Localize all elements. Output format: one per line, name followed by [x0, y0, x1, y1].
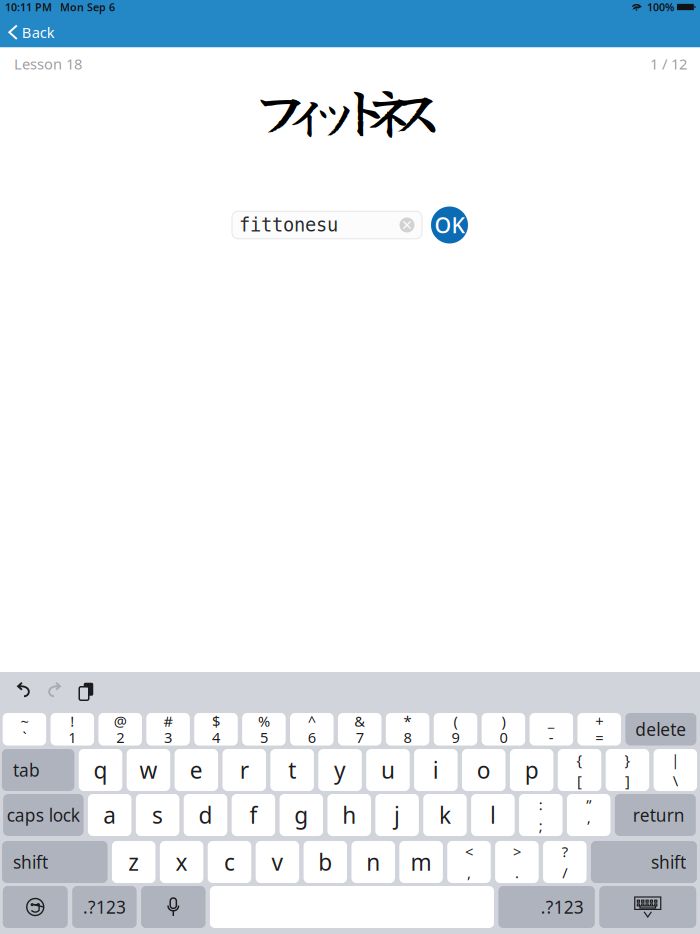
- staticText: j: [394, 800, 400, 830]
- staticText: k: [439, 800, 451, 830]
- staticText: ,: [467, 863, 471, 882]
- button[interactable]: caps lock: [3, 794, 84, 836]
- button[interactable]: }: [606, 749, 649, 791]
- button[interactable]: a: [88, 794, 131, 836]
- staticText: Mon Sep 6: [60, 0, 115, 14]
- button[interactable]: d: [184, 794, 227, 836]
- button[interactable]: .?123: [72, 886, 137, 928]
- staticText: =: [595, 728, 603, 747]
- staticText: 6: [308, 728, 316, 747]
- button[interactable]: y: [318, 749, 362, 791]
- button[interactable]: f: [232, 794, 275, 836]
- button[interactable]: k: [423, 794, 467, 836]
- button[interactable]: .?123: [498, 886, 595, 928]
- staticText: `: [22, 728, 26, 747]
- button[interactable]: m: [399, 841, 443, 883]
- staticText: tab: [13, 758, 40, 781]
- button[interactable]: ^: [290, 713, 333, 745]
- button[interactable]: Dictation: [141, 886, 206, 928]
- button[interactable]: Paste: [69, 669, 99, 710]
- button[interactable]: tab: [2, 749, 74, 791]
- staticText: &: [354, 711, 365, 731]
- staticText: -: [549, 728, 554, 747]
- button[interactable]: q: [79, 749, 122, 791]
- button[interactable]: <: [447, 841, 491, 883]
- staticText: \: [673, 771, 678, 790]
- button[interactable]: Back: [0, 21, 67, 47]
- button[interactable]: (: [434, 713, 477, 745]
- button[interactable]: Redo: [39, 669, 69, 710]
- button[interactable]: delete: [625, 713, 696, 745]
- button[interactable]: Hide keyboard: [599, 886, 696, 928]
- staticText: 9: [451, 728, 459, 747]
- button[interactable]: +: [577, 713, 621, 745]
- button[interactable]: l: [471, 794, 515, 836]
- button[interactable]: e: [175, 749, 218, 791]
- button[interactable]: return: [615, 794, 696, 836]
- staticText: 0: [499, 728, 507, 747]
- button[interactable]: c: [208, 841, 251, 883]
- button[interactable]: _: [529, 713, 573, 745]
- button[interactable]: $: [194, 713, 238, 745]
- staticText: ”: [586, 795, 591, 814]
- staticText: ス: [388, 67, 445, 150]
- staticText: ): [501, 711, 505, 731]
- button[interactable]: s: [136, 794, 179, 836]
- button[interactable]: shift: [2, 841, 108, 883]
- button[interactable]: t: [270, 749, 314, 791]
- staticText: v: [271, 847, 283, 877]
- staticText: c: [224, 847, 235, 877]
- staticText: s: [152, 800, 163, 830]
- staticText: _: [548, 711, 555, 731]
- button[interactable]: {: [558, 749, 601, 791]
- staticText: +: [595, 711, 603, 731]
- button[interactable]: b: [304, 841, 347, 883]
- button[interactable]: n: [351, 841, 395, 883]
- button[interactable]: Undo: [9, 669, 39, 710]
- button[interactable]: w: [127, 749, 170, 791]
- staticText: z: [128, 847, 139, 877]
- button[interactable]: *: [386, 713, 429, 745]
- button[interactable]: p: [510, 749, 553, 791]
- button[interactable]: :: [519, 794, 562, 836]
- button[interactable]: !: [50, 713, 94, 745]
- button[interactable]: OK: [431, 206, 468, 243]
- button[interactable]: ~: [3, 713, 46, 745]
- staticText: ’: [587, 816, 590, 835]
- button[interactable]: i: [414, 749, 458, 791]
- button[interactable]: %: [242, 713, 286, 745]
- button[interactable]: ): [482, 713, 525, 745]
- staticText: $: [212, 711, 220, 731]
- button[interactable]: >: [495, 841, 539, 883]
- button[interactable]: |: [654, 749, 697, 791]
- staticText: #: [164, 711, 173, 731]
- button[interactable]: ”: [567, 794, 610, 836]
- button[interactable]: @: [98, 713, 142, 745]
- button[interactable]: Clear text: [396, 214, 418, 236]
- staticText: h: [342, 800, 356, 830]
- button[interactable]: x: [160, 841, 203, 883]
- button[interactable]: j: [375, 794, 419, 836]
- staticText: x: [176, 847, 188, 877]
- button[interactable]: shift: [591, 841, 697, 883]
- button[interactable]: g: [280, 794, 323, 836]
- staticText: a: [103, 800, 116, 830]
- button[interactable]: h: [327, 794, 371, 836]
- button[interactable]: u: [366, 749, 410, 791]
- staticText: fittonesu: [239, 214, 338, 236]
- button[interactable]: z: [112, 841, 155, 883]
- button[interactable]: v: [256, 841, 299, 883]
- staticText: shift: [13, 850, 48, 873]
- staticText: .?123: [83, 895, 126, 918]
- button[interactable]: o: [462, 749, 505, 791]
- staticText: 4: [212, 728, 220, 747]
- staticText: Lesson 18: [14, 54, 82, 73]
- button[interactable]: r: [222, 749, 266, 791]
- staticText: ネ: [361, 67, 418, 150]
- button[interactable]: ?: [543, 841, 586, 883]
- button[interactable]: &: [338, 713, 381, 745]
- button[interactable]: #: [146, 713, 190, 745]
- staticText: o: [477, 755, 491, 785]
- button[interactable]: Emoji: [3, 886, 68, 928]
